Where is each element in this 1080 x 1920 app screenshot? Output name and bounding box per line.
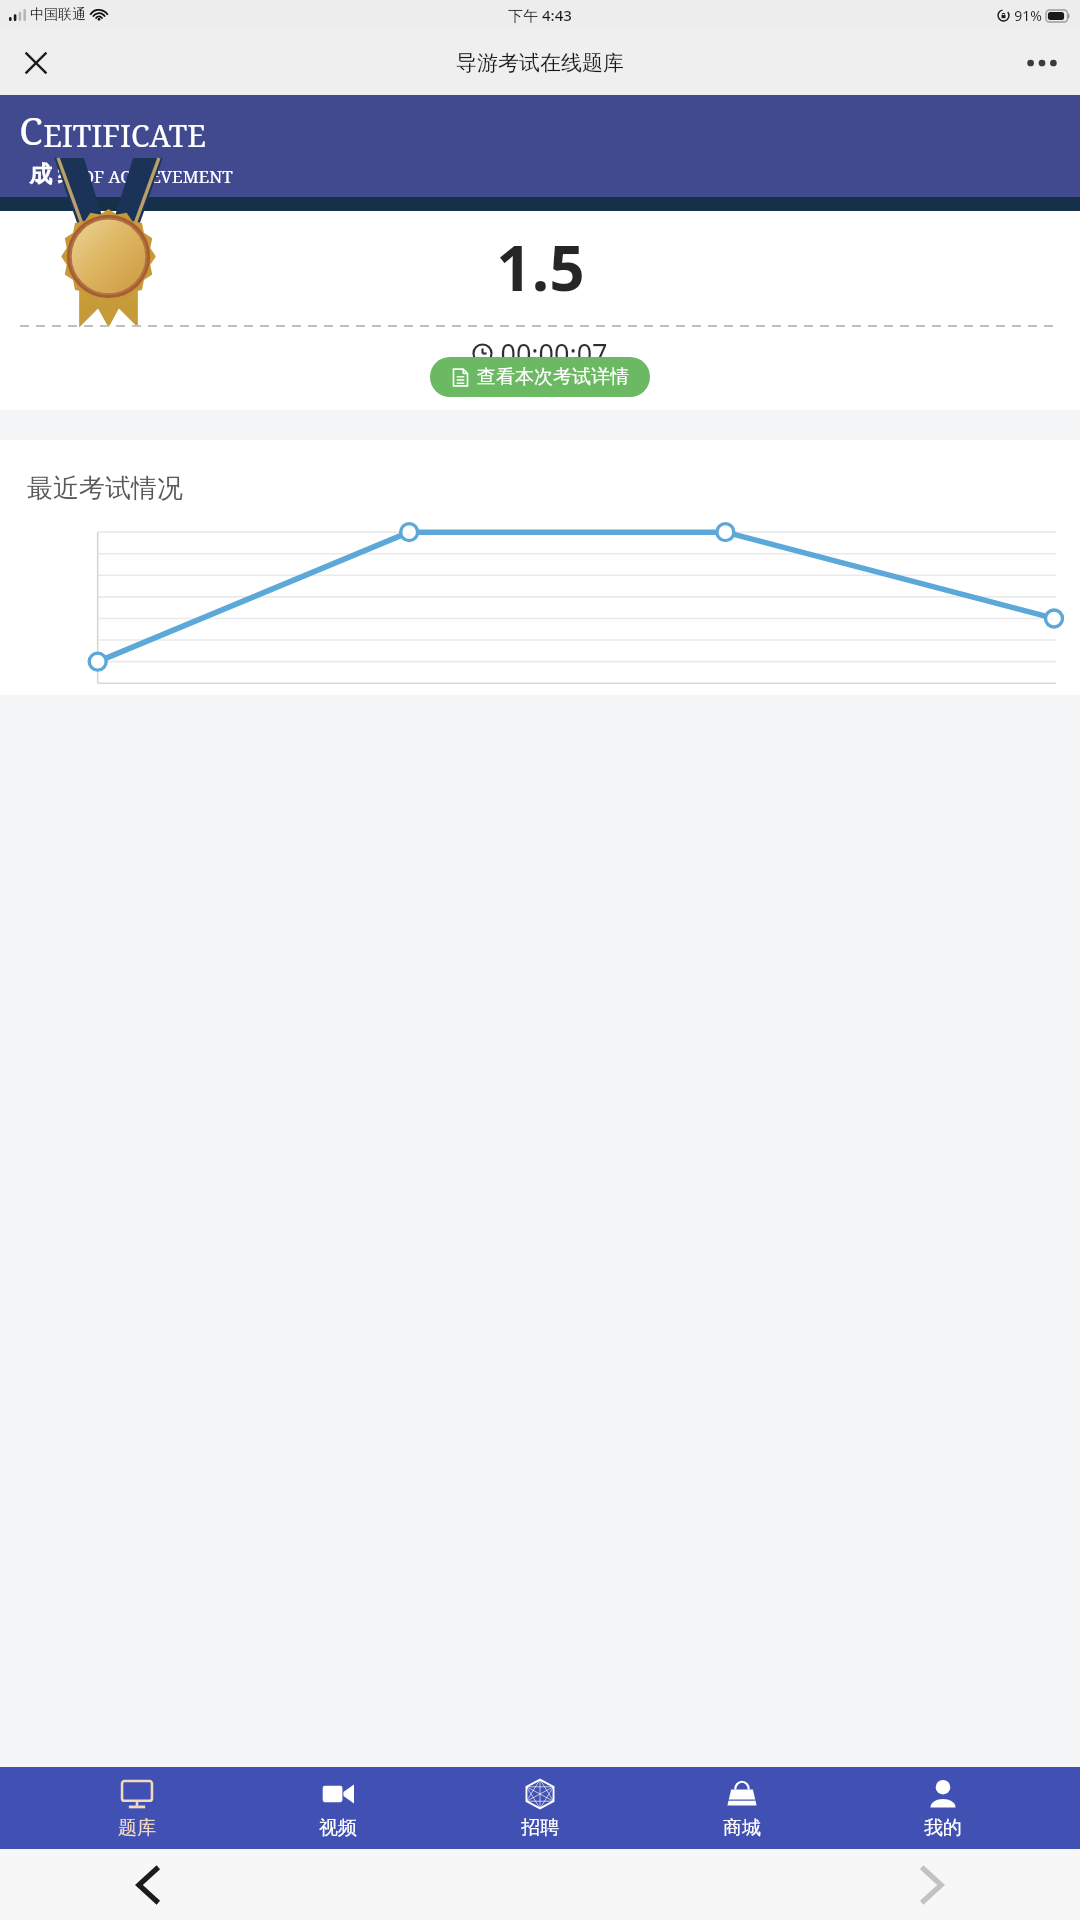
- staticText: 视频: [319, 1816, 357, 1840]
- staticText: 中国联通: [30, 6, 86, 24]
- button[interactable]: 招聘: [475, 1767, 605, 1849]
- button[interactable]: Back: [108, 1849, 188, 1920]
- button[interactable]: 视频: [273, 1767, 403, 1849]
- staticText: EITIFICATE: [43, 115, 206, 156]
- button[interactable]: Close: [10, 37, 62, 89]
- staticText: 成 绩: [29, 157, 81, 188]
- staticText: 招聘: [521, 1816, 559, 1840]
- staticText: 1.5: [496, 225, 585, 309]
- staticText: 商城: [723, 1816, 761, 1840]
- staticText: 查看本次考试详情: [477, 365, 629, 389]
- staticText: C: [19, 104, 43, 156]
- staticText: 下午 4:43: [508, 5, 572, 25]
- button[interactable]: 查看本次考试详情: [430, 357, 650, 397]
- button[interactable]: 我的: [878, 1767, 1008, 1849]
- staticText: 00:00:07: [500, 335, 608, 372]
- staticText: 91%: [1014, 6, 1042, 25]
- staticText: OF ACHIEVEMENT: [81, 165, 233, 188]
- staticText: 题库: [118, 1816, 156, 1840]
- button[interactable]: Forward: [892, 1849, 972, 1920]
- button[interactable]: More options: [1016, 37, 1068, 89]
- staticText: 最近考试情况: [27, 472, 183, 505]
- staticText: 我的: [924, 1816, 962, 1840]
- staticText: 导游考试在线题库: [456, 50, 624, 76]
- button[interactable]: 题库: [72, 1767, 202, 1849]
- button[interactable]: 商城: [677, 1767, 807, 1849]
